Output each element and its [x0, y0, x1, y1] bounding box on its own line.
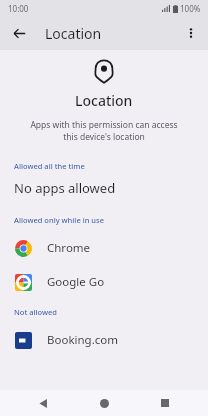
- staticText: Chrome: [47, 240, 91, 256]
- button[interactable]: Recent apps: [152, 390, 178, 416]
- staticText: 10:00: [8, 3, 29, 14]
- button[interactable]: More options: [178, 20, 204, 46]
- staticText: Location: [45, 24, 102, 43]
- button[interactable]: Chrome: [0, 231, 208, 265]
- staticText: 100%: [180, 3, 201, 14]
- staticText: Google Go: [47, 274, 105, 290]
- staticText: Apps with this permission can access thi…: [30, 119, 178, 143]
- staticText: Allowed all the time: [14, 161, 85, 171]
- staticText: Allowed only while in use: [14, 215, 104, 225]
- button[interactable]: Booking.com: [0, 323, 208, 357]
- staticText: No apps allowed: [14, 179, 116, 197]
- button[interactable]: Google Go: [0, 265, 208, 299]
- staticText: Location: [75, 91, 133, 110]
- button[interactable]: Back: [30, 390, 56, 416]
- staticText: Booking.com: [47, 332, 118, 348]
- button[interactable]: Home: [91, 390, 117, 416]
- button[interactable]: Back: [6, 20, 32, 46]
- staticText: Not allowed: [14, 307, 58, 317]
